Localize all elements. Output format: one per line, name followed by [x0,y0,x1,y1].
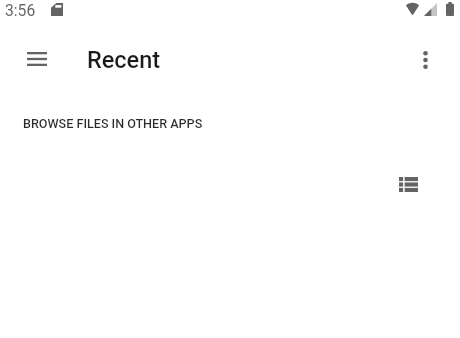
button[interactable]: Open navigation drawer [17,39,57,79]
button[interactable]: List view [390,166,426,202]
staticText: Recent [87,46,161,74]
staticText: BROWSE FILES IN OTHER APPS [23,116,203,131]
button[interactable]: More options [403,38,447,82]
staticText: 3:56 [5,1,36,19]
